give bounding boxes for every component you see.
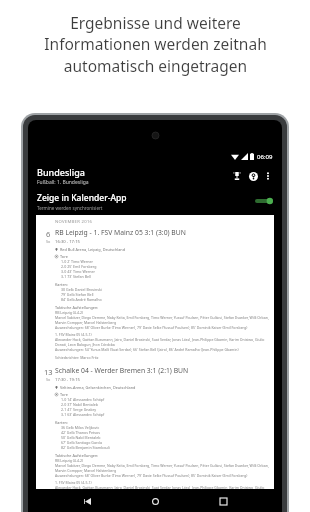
staticText: Ergebnisse und weitere Informationen wer… xyxy=(44,12,267,77)
button[interactable]: 13 xyxy=(41,366,270,489)
staticText: So xyxy=(46,377,51,382)
staticText: 2-1 41' Serge Gnabry xyxy=(61,407,97,412)
staticText: NOVEMBER 2016 xyxy=(55,219,93,225)
staticText: Auswechslungen: 68' Oliver Burke (Timo W… xyxy=(55,473,248,478)
staticText: Veltins-Arena, Gelsenkirchen, Deutschlan… xyxy=(60,385,136,390)
staticText: 42' Gelb Thanos Petsos xyxy=(61,430,100,435)
staticText: So xyxy=(46,239,51,244)
staticText: 82' Gelb Benjamin Stambouli xyxy=(61,445,110,450)
staticText: Schalke 04 - Werder Bremen 3:1 (2:1) BUN xyxy=(55,366,189,375)
staticText: 3-1 63' Alessandro Schöpf xyxy=(61,412,105,417)
staticText: 36 Gelb Milos Veljkovic xyxy=(61,425,100,430)
staticText: Termine werden synchronisiert xyxy=(37,205,103,211)
staticText: Tore xyxy=(60,392,68,397)
staticText: 13 xyxy=(44,367,53,377)
staticText: 2-0 37' Nabil Bentaleb xyxy=(61,402,98,407)
staticText: Taktische Aufstellungen: xyxy=(55,453,99,458)
button[interactable]: Hilfe xyxy=(245,168,261,184)
staticText: Zeige in Kalender-App xyxy=(37,192,127,204)
staticText: Tore xyxy=(60,254,68,259)
staticText: 06:09 xyxy=(257,153,273,161)
staticText: 67' Gelb Santiago García xyxy=(61,440,103,445)
staticText: 79' Gelb Stefan Bell xyxy=(61,292,94,297)
staticText: Alexander Hack, Gaëtan Bussmann, Jairo, … xyxy=(55,485,270,489)
staticText: 1-0 2' Timo Werner xyxy=(61,259,93,264)
button[interactable]: Einstellungen xyxy=(229,168,245,184)
staticText: 84' Gelb André Ramalho xyxy=(61,297,102,302)
staticText: Karten: xyxy=(55,420,68,425)
button[interactable]: Übersicht xyxy=(214,492,232,510)
staticText: 50' Gelb Nabil Bentaleb xyxy=(61,435,101,440)
button[interactable]: Weitere Optionen xyxy=(261,169,275,183)
staticText: Bundesliga xyxy=(37,166,85,178)
staticText: Karten: xyxy=(55,282,68,287)
staticText: 3-0 43' Timo Werner xyxy=(61,269,95,274)
button[interactable]: 6 xyxy=(41,228,270,360)
staticText: 1. FSV Mainz 05 (4-5-1) xyxy=(55,332,92,337)
staticText: RB Leipzig (4-4-2) xyxy=(55,310,84,315)
staticText: Auswechslungen: 54' Yunus Malli (Suat Se… xyxy=(55,347,239,352)
staticText: 30 Gelb Daniel Brosinski xyxy=(61,287,102,292)
staticText: Taktische Aufstellungen: xyxy=(55,305,99,310)
staticText: Auswechslungen: 68' Oliver Burke (Timo W… xyxy=(55,325,248,330)
staticText: Schiedsrichter: Marco Fritz xyxy=(55,355,99,360)
staticText: Alexander Hack, Gaëtan Bussmann, Jairo, … xyxy=(55,337,270,347)
staticText: Red Bull Arena, Leipzig, Deutschland xyxy=(60,247,126,252)
staticText: 6 xyxy=(46,229,51,239)
button[interactable]: Startbildschirm xyxy=(146,492,164,510)
staticText: 17:30 - 19:15 xyxy=(55,377,80,383)
staticText: 2-0 25' Emil Forsberg xyxy=(61,264,97,269)
staticText: Fußball: 1. Bundesliga xyxy=(37,179,89,186)
staticText: 1. FSV Mainz 05 (4-5-1) xyxy=(55,480,92,485)
staticText: 16:30 - 17:15 xyxy=(55,239,80,245)
staticText: RB Leipzig - 1. FSV Mainz 05 3:1 (3:0) B… xyxy=(55,228,186,237)
staticText: Marcel Sabitzer, Diego Demme, Naby Keïta… xyxy=(55,463,270,473)
staticText: Marcel Sabitzer, Diego Demme, Naby Keïta… xyxy=(55,315,270,325)
button[interactable]: Zeige in Kalender-App xyxy=(28,189,282,213)
staticText: 1-0 14' Alessandro Schöpf xyxy=(61,397,105,402)
staticText: 3-1 73' Stefan Bell xyxy=(61,274,91,279)
staticText: RB Leipzig (4-4-2) xyxy=(55,458,84,463)
button[interactable]: Zurück xyxy=(78,492,96,510)
